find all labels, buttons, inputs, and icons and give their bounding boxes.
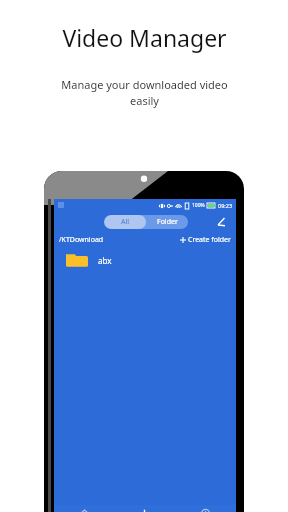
button[interactable]: Edit xyxy=(212,213,230,231)
staticText: Video Manager xyxy=(62,22,227,53)
staticText: abx xyxy=(98,255,112,266)
button[interactable]: History xyxy=(175,505,236,512)
staticText: Manage your downloaded video easily xyxy=(61,77,228,108)
button[interactable]: Download xyxy=(114,505,175,512)
button[interactable]: Create folder xyxy=(180,235,231,245)
button[interactable]: Folder xyxy=(146,215,188,229)
staticText: 100% xyxy=(192,202,205,209)
staticText: Folder xyxy=(157,217,178,227)
staticText: 09:23 xyxy=(218,202,233,209)
button[interactable]: abx xyxy=(66,247,236,273)
button[interactable]: All xyxy=(104,215,146,229)
staticText: All xyxy=(121,217,130,227)
staticText: /KTDownload xyxy=(59,235,104,245)
staticText: Create folder xyxy=(188,235,231,245)
button[interactable]: Home xyxy=(54,505,114,512)
